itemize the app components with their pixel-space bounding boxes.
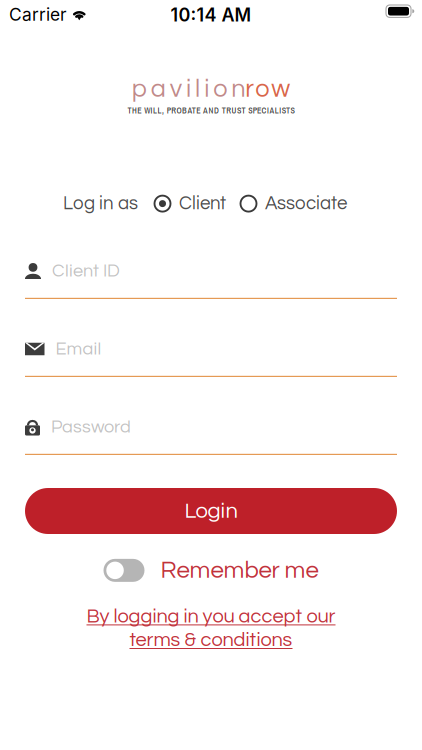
button[interactable]: Remember me bbox=[103, 559, 144, 582]
staticText: Client bbox=[179, 194, 226, 213]
staticText: Remember me bbox=[160, 558, 318, 583]
staticText: Log in as bbox=[63, 194, 138, 213]
staticText: row bbox=[245, 76, 290, 102]
staticText: terms & conditions bbox=[129, 630, 292, 650]
button[interactable]: Login bbox=[25, 488, 397, 534]
staticText: THE WILL, PROBATE AND TRUST SPECIALISTS bbox=[127, 105, 294, 116]
staticText: Password bbox=[51, 418, 131, 436]
button[interactable]: Client bbox=[154, 194, 226, 213]
staticText: Client ID bbox=[52, 262, 120, 280]
staticText: pavilion bbox=[132, 76, 245, 102]
staticText: Login bbox=[184, 500, 237, 522]
button[interactable]: By logging in you accept our bbox=[86, 606, 335, 650]
staticText: 10:14 AM bbox=[170, 4, 251, 26]
button[interactable]: Associate bbox=[240, 194, 347, 213]
staticText: Carrier bbox=[9, 4, 67, 25]
staticText: Email bbox=[55, 340, 101, 358]
staticText: Associate bbox=[265, 194, 347, 213]
staticText: By logging in you accept our bbox=[86, 606, 335, 627]
